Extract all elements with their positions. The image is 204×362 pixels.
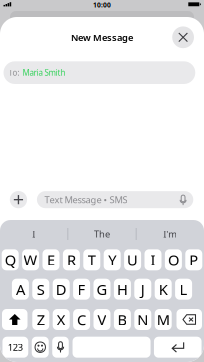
button[interactable]: C bbox=[73, 309, 90, 330]
button[interactable]: Q bbox=[2, 249, 19, 270]
button[interactable]: 123 bbox=[2, 337, 28, 358]
staticText: O bbox=[168, 250, 179, 270]
button[interactable]: P bbox=[185, 249, 202, 270]
staticText: H bbox=[117, 279, 128, 299]
button[interactable]: G bbox=[93, 279, 110, 300]
button[interactable]: Z bbox=[32, 309, 49, 330]
staticText: B bbox=[117, 310, 127, 329]
button[interactable]: S bbox=[32, 279, 49, 300]
staticText: New Message bbox=[71, 31, 133, 43]
button[interactable]: B bbox=[114, 309, 131, 330]
staticText: S bbox=[37, 279, 45, 299]
staticText: L bbox=[180, 279, 188, 299]
staticText: K bbox=[159, 279, 168, 299]
staticText: F bbox=[78, 279, 86, 299]
staticText: J bbox=[141, 279, 145, 299]
button[interactable]: D bbox=[53, 279, 70, 300]
button[interactable]: Space bbox=[72, 337, 150, 358]
staticText: U bbox=[127, 250, 138, 270]
staticText: M bbox=[157, 310, 170, 329]
button[interactable]: Dictate bbox=[52, 337, 69, 358]
staticText: I bbox=[32, 228, 35, 240]
staticText: E bbox=[47, 250, 55, 270]
staticText: Maria Smith bbox=[22, 67, 65, 78]
button[interactable]: Emoji bbox=[32, 337, 49, 358]
button[interactable]: I bbox=[0, 220, 67, 248]
staticText: P bbox=[189, 250, 198, 270]
button[interactable]: U bbox=[124, 249, 141, 270]
button[interactable]: X bbox=[53, 309, 70, 330]
staticText: D bbox=[56, 279, 67, 299]
button[interactable]: T bbox=[83, 249, 100, 270]
staticText: T bbox=[88, 250, 96, 270]
staticText: The bbox=[94, 228, 110, 240]
staticText: Y bbox=[108, 250, 116, 270]
staticText: 123 bbox=[8, 341, 23, 353]
button[interactable]: Return bbox=[154, 337, 201, 358]
staticText: X bbox=[57, 310, 66, 329]
staticText: I'm bbox=[163, 228, 177, 240]
staticText: Text Message • SMS bbox=[44, 193, 127, 206]
staticText: W bbox=[24, 250, 38, 270]
button[interactable]: Close bbox=[172, 26, 194, 48]
staticText: Q bbox=[5, 250, 16, 270]
staticText: R bbox=[67, 250, 76, 270]
button[interactable]: Delete bbox=[176, 309, 202, 330]
button[interactable]: M bbox=[155, 309, 172, 330]
button[interactable]: I bbox=[144, 249, 161, 270]
staticText: To: bbox=[8, 67, 19, 78]
button[interactable]: O bbox=[165, 249, 182, 270]
staticText: Z bbox=[37, 310, 45, 329]
staticText: N bbox=[137, 310, 148, 329]
button[interactable]: J bbox=[134, 279, 151, 300]
button[interactable]: R bbox=[63, 249, 80, 270]
button[interactable]: Y bbox=[104, 249, 121, 270]
button[interactable]: Add media bbox=[10, 191, 27, 208]
staticText: 10:00 bbox=[93, 1, 111, 9]
button[interactable]: I'm bbox=[137, 220, 204, 248]
button[interactable]: Shift bbox=[2, 309, 27, 330]
staticText: A bbox=[16, 279, 25, 299]
button[interactable]: A bbox=[12, 279, 29, 300]
button[interactable]: E bbox=[42, 249, 59, 270]
staticText: G bbox=[96, 279, 107, 299]
button[interactable]: The bbox=[68, 220, 136, 248]
staticText: I bbox=[150, 250, 155, 270]
button[interactable]: W bbox=[22, 249, 39, 270]
button[interactable]: L bbox=[175, 279, 192, 300]
button[interactable]: V bbox=[93, 309, 110, 330]
button[interactable]: K bbox=[155, 279, 172, 300]
button[interactable]: N bbox=[134, 309, 151, 330]
button[interactable]: H bbox=[114, 279, 131, 300]
button[interactable]: F bbox=[73, 279, 90, 300]
staticText: V bbox=[97, 310, 106, 329]
staticText: C bbox=[77, 310, 86, 329]
